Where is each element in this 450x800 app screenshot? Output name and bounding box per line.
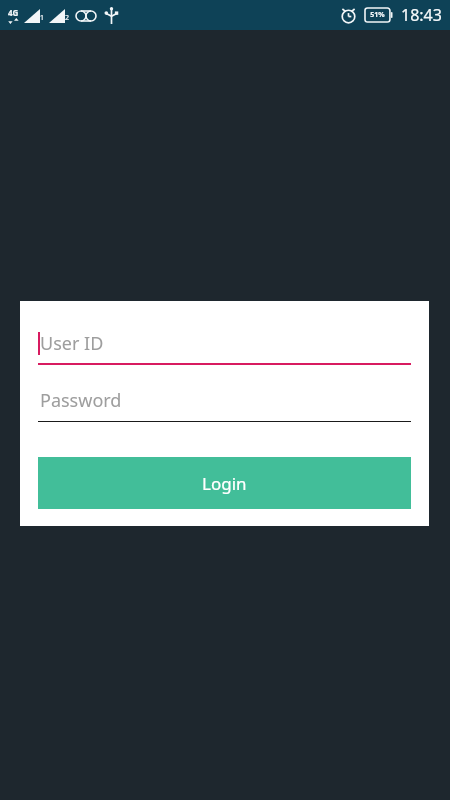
- other: Alarm set: [340, 7, 357, 24]
- staticText: 18:43: [401, 4, 442, 26]
- button[interactable]: Login: [38, 457, 411, 509]
- other: Voicemail: [75, 10, 97, 22]
- staticText: Login: [202, 472, 247, 495]
- button[interactable]: User ID: [38, 331, 411, 365]
- staticText: 2: [65, 13, 70, 23]
- staticText: Password: [40, 388, 122, 413]
- other: Battery 51 percent: [365, 8, 393, 22]
- staticText: 4G: [8, 7, 19, 18]
- other: 4G network: [8, 7, 19, 24]
- staticText: 1: [40, 13, 45, 23]
- staticText: 51%: [370, 10, 385, 20]
- other: USB connected: [105, 7, 118, 24]
- button[interactable]: Password: [38, 388, 411, 422]
- staticText: User ID: [40, 331, 104, 356]
- other: Signal 2: [49, 9, 70, 23]
- other: Signal 1: [24, 9, 45, 23]
